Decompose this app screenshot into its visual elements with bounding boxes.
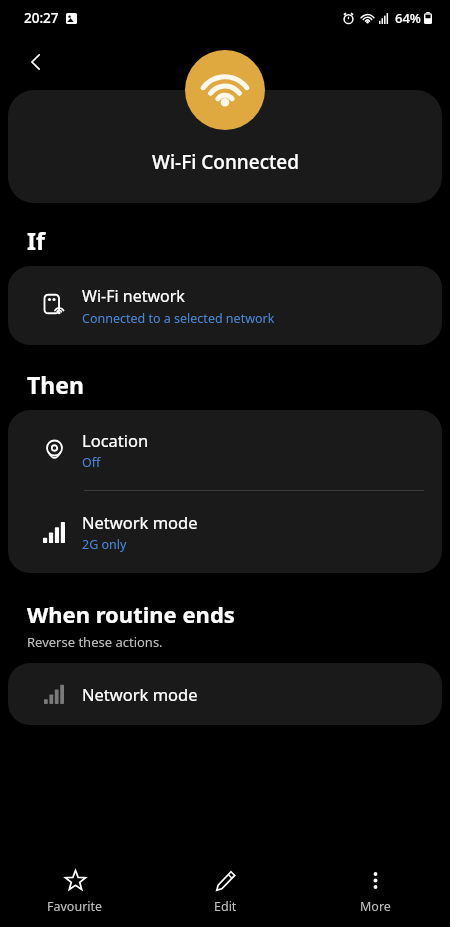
staticText: More	[360, 898, 391, 915]
staticText: 20:27	[24, 9, 59, 27]
button[interactable]: Wi-Fi Connected	[8, 90, 442, 203]
button[interactable]: Network mode	[8, 663, 442, 725]
staticText: Wi-Fi network	[82, 285, 185, 307]
staticText: If	[27, 225, 45, 256]
button[interactable]: Wi-Fi network	[8, 266, 442, 345]
button[interactable]: Location	[8, 410, 442, 490]
staticText: Edit	[214, 898, 237, 915]
staticText: Wi-Fi Connected	[152, 149, 299, 175]
staticText: Location	[82, 429, 149, 451]
staticText: Network mode	[82, 511, 198, 533]
staticText: Reverse these actions.	[27, 633, 163, 651]
button[interactable]: More	[300, 857, 450, 927]
staticText: Connected to a selected network	[82, 310, 275, 327]
staticText: Off	[82, 454, 101, 471]
staticText: 64%	[395, 9, 421, 27]
staticText: When routine ends	[27, 599, 235, 629]
staticText: Favourite	[47, 898, 103, 915]
staticText: 2G only	[82, 536, 127, 553]
button[interactable]: Network mode	[8, 491, 442, 573]
button[interactable]: Edit	[150, 857, 300, 927]
staticText: Then	[27, 369, 84, 400]
staticText: Network mode	[82, 683, 198, 705]
button[interactable]: Favourite	[0, 857, 150, 927]
button[interactable]: Back	[16, 42, 56, 82]
